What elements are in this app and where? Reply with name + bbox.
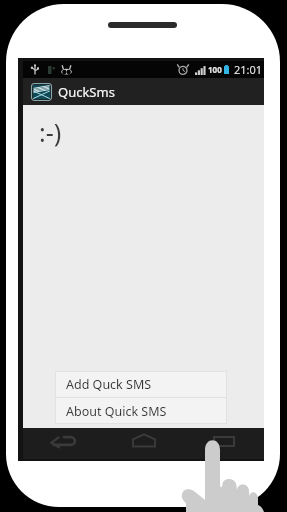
staticText: 100	[208, 64, 222, 75]
staticText: About Quick SMS	[66, 403, 167, 420]
staticText: :-)	[39, 115, 62, 149]
button[interactable]: Recent apps	[184, 428, 264, 459]
button[interactable]: About Quick SMS	[55, 398, 227, 424]
staticText: 21:01	[234, 62, 263, 77]
button[interactable]: Add Quck SMS	[55, 371, 227, 397]
staticText: Add Quck SMS	[66, 376, 152, 393]
button[interactable]: Home	[104, 428, 184, 459]
staticText: QuckSms	[58, 83, 115, 101]
button[interactable]: Back	[23, 428, 104, 459]
